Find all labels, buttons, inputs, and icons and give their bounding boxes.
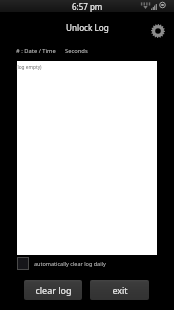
staticText: clear log [35,284,72,296]
staticText: # : Date / Time [16,47,56,55]
button[interactable]: exit [90,280,149,300]
staticText: (log empty) [16,64,42,71]
button[interactable]: clear log [24,280,82,300]
staticText: 6:57 pm [72,1,103,12]
staticText: Unlock Log [66,22,109,33]
staticText: automatically clear log daily [34,260,106,267]
button[interactable]: Settings [150,23,166,39]
staticText: Seconds [65,47,88,55]
button[interactable]: automatically clear log daily [17,255,174,272]
staticText: exit [112,284,128,296]
